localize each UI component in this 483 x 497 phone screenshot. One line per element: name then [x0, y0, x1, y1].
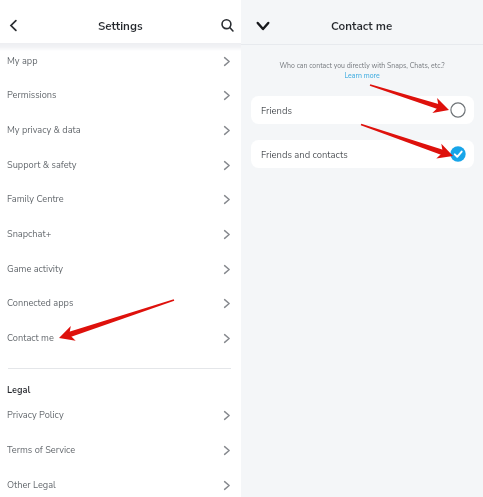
button[interactable]: Search	[214, 12, 241, 39]
button[interactable]: My app	[0, 44, 241, 79]
staticText: Friends	[261, 104, 292, 117]
staticText: Who can contact you directly with Snaps,…	[241, 61, 483, 70]
button[interactable]: Friends	[251, 96, 474, 124]
staticText: Terms of Service	[7, 444, 76, 457]
staticText: Legal	[7, 384, 31, 396]
staticText: Snapchat+	[7, 228, 52, 241]
staticText: Contact me	[7, 332, 54, 345]
button[interactable]: My privacy & data	[0, 113, 241, 148]
staticText: Friends and contacts	[261, 148, 348, 161]
button[interactable]: Permissions	[0, 78, 241, 113]
staticText: Privacy Policy	[7, 409, 64, 422]
staticText: Game activity	[7, 263, 63, 276]
staticText: Contact me	[331, 18, 393, 34]
staticText: Support & safety	[7, 159, 77, 172]
staticText: Settings	[98, 18, 143, 34]
staticText: Connected apps	[7, 297, 74, 310]
button[interactable]: Privacy Policy	[0, 398, 241, 433]
staticText: My app	[7, 55, 38, 68]
button[interactable]: Game activity	[0, 252, 241, 287]
staticText: Other Legal	[7, 479, 56, 492]
staticText: My privacy & data	[7, 124, 81, 137]
button[interactable]: Family Centre	[0, 182, 241, 217]
button[interactable]: Contact me	[0, 321, 241, 356]
button[interactable]: Collapse	[249, 12, 276, 39]
staticText: Family Centre	[7, 193, 64, 206]
button[interactable]: Other Legal	[0, 468, 241, 497]
button[interactable]: Back	[0, 12, 27, 39]
button[interactable]: Terms of Service	[0, 433, 241, 468]
button[interactable]: Support & safety	[0, 148, 241, 183]
staticText: Permissions	[7, 89, 57, 102]
button[interactable]: Learn more	[344, 71, 380, 80]
button[interactable]: Friends and contacts	[251, 140, 474, 168]
button[interactable]: Snapchat+	[0, 217, 241, 252]
button[interactable]: Connected apps	[0, 286, 241, 321]
